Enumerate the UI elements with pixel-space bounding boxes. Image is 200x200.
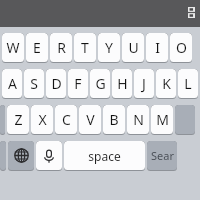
button[interactable]: space <box>64 141 145 170</box>
staticText: Z <box>14 110 23 129</box>
staticText: S <box>30 74 38 93</box>
button[interactable]: W <box>2 33 24 62</box>
staticText: U <box>128 38 139 57</box>
button[interactable]: X <box>31 105 53 134</box>
button[interactable]: J <box>134 69 154 98</box>
staticText: F <box>74 74 82 93</box>
button[interactable]: V <box>79 105 101 134</box>
button[interactable]: U <box>122 33 144 62</box>
button[interactable]: T <box>74 33 96 62</box>
button[interactable]: A <box>2 69 22 98</box>
button[interactable]: Numbers <box>0 141 6 170</box>
staticText: R <box>57 38 66 57</box>
staticText: B <box>109 110 119 129</box>
staticText: J <box>142 74 146 93</box>
button[interactable]: B <box>103 105 125 134</box>
staticText: X <box>38 110 47 129</box>
button[interactable]: Sear <box>147 141 177 170</box>
staticText: C <box>62 110 71 129</box>
button[interactable]: S <box>24 69 44 98</box>
staticText: E <box>33 38 41 57</box>
button[interactable]: R <box>50 33 72 62</box>
staticText: I <box>155 38 160 57</box>
button[interactable]: O <box>170 33 192 62</box>
staticText: G <box>95 74 106 93</box>
button[interactable]: L <box>178 69 198 98</box>
staticText: M <box>156 110 169 129</box>
staticText: O <box>176 38 187 57</box>
staticText: D <box>51 74 62 93</box>
staticText: T <box>81 38 89 57</box>
staticText: A <box>8 74 17 93</box>
button[interactable]: Dictate <box>36 141 62 170</box>
staticText: Sear <box>151 148 174 163</box>
button[interactable]: Y <box>98 33 120 62</box>
button[interactable]: M <box>151 105 173 134</box>
button[interactable]: N <box>127 105 149 134</box>
button[interactable]: C <box>55 105 77 134</box>
button[interactable]: Shift <box>0 105 5 134</box>
button[interactable]: K <box>156 69 176 98</box>
button[interactable]: Badge <box>188 7 195 18</box>
staticText: space <box>88 148 121 164</box>
staticText: W <box>6 38 20 57</box>
button[interactable]: Z <box>7 105 29 134</box>
button[interactable]: H <box>112 69 132 98</box>
staticText: V <box>86 110 95 129</box>
staticText: Y <box>105 38 113 57</box>
staticText: L <box>184 74 192 93</box>
button[interactable]: E <box>26 33 48 62</box>
button[interactable]: G <box>90 69 110 98</box>
button[interactable]: I <box>146 33 168 62</box>
staticText: H <box>117 74 128 93</box>
button[interactable]: D <box>46 69 66 98</box>
staticText: N <box>133 110 144 129</box>
staticText: K <box>162 74 171 93</box>
button[interactable]: Change keyboard <box>8 141 34 170</box>
button[interactable]: F <box>68 69 88 98</box>
